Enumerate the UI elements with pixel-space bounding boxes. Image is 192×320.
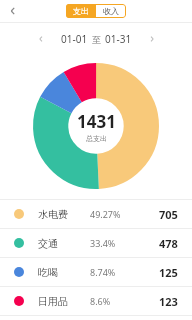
staticText: 478 xyxy=(159,236,178,251)
button[interactable]: Previous period xyxy=(31,29,51,49)
staticText: 01-31 xyxy=(105,32,132,46)
staticText: 8.74% xyxy=(90,266,116,278)
button[interactable]: Back xyxy=(4,2,22,20)
button[interactable]: 日用品 xyxy=(0,287,192,315)
button[interactable]: 01-01 xyxy=(61,32,132,46)
staticText: 33.4% xyxy=(90,237,116,249)
button[interactable]: Next period xyxy=(142,29,162,49)
staticText: 日用品 xyxy=(38,295,68,308)
staticText: 1431 xyxy=(77,110,116,133)
staticText: 支出 xyxy=(73,6,89,16)
staticText: 收入 xyxy=(103,6,119,16)
button[interactable]: 交通 xyxy=(0,229,192,257)
staticText: 总支出 xyxy=(86,134,107,143)
staticText: 123 xyxy=(159,294,178,309)
staticText: 01-01 xyxy=(61,32,88,46)
staticText: 水电费 xyxy=(38,208,68,221)
staticText: 125 xyxy=(159,265,178,280)
staticText: 705 xyxy=(159,207,178,222)
staticText: 49.27% xyxy=(90,208,121,220)
button[interactable]: 吃喝 xyxy=(0,258,192,286)
button[interactable]: 收入 xyxy=(96,4,126,18)
staticText: 吃喝 xyxy=(38,266,58,279)
button[interactable]: 水电费 xyxy=(0,200,192,228)
staticText: 至 xyxy=(92,34,101,45)
staticText: 交通 xyxy=(38,237,58,250)
button[interactable]: 支出 xyxy=(66,4,96,18)
staticText: 8.6% xyxy=(90,295,111,307)
